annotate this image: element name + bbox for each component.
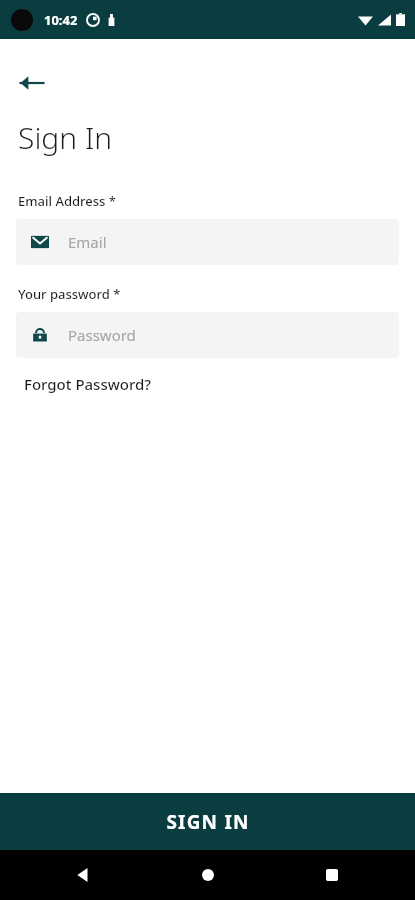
button[interactable]: SIGN IN bbox=[0, 793, 415, 850]
button[interactable]: Back bbox=[62, 854, 104, 896]
staticText: SIGN IN bbox=[166, 809, 250, 835]
button[interactable]: Back bbox=[10, 61, 54, 105]
staticText: Password bbox=[68, 325, 136, 345]
staticText: Your password * bbox=[18, 285, 121, 303]
button[interactable]: Recent apps bbox=[311, 854, 353, 896]
button[interactable]: Home bbox=[187, 854, 229, 896]
staticText: Email bbox=[68, 232, 107, 252]
staticText: Forgot Password? bbox=[24, 374, 152, 394]
button[interactable]: Forgot Password? bbox=[18, 370, 158, 398]
button[interactable]: Email Address bbox=[16, 219, 399, 265]
staticText: Email Address * bbox=[18, 192, 116, 210]
staticText: Sign In bbox=[18, 117, 113, 158]
button[interactable]: Password bbox=[16, 312, 399, 358]
staticText: 10:42 bbox=[44, 11, 78, 29]
